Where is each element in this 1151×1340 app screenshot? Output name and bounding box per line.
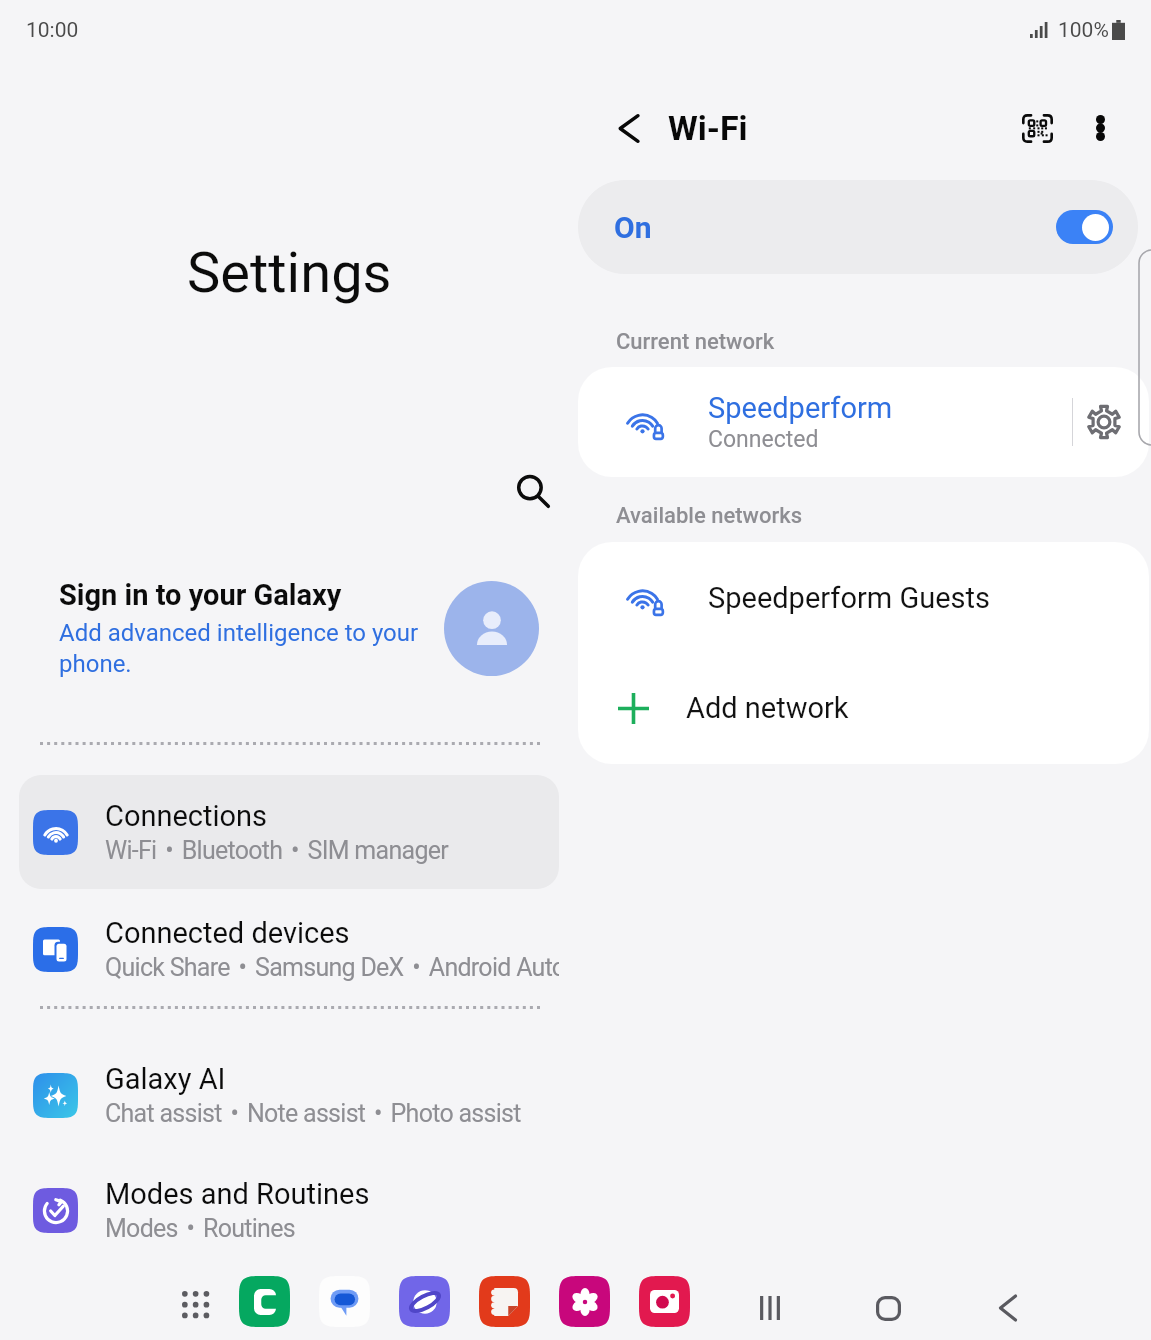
staticText: Wi-Fi	[668, 108, 748, 148]
staticText: Connected devices	[105, 916, 350, 950]
staticText: Current network	[616, 329, 775, 355]
button[interactable]: Search	[503, 461, 563, 521]
button[interactable]: Home	[858, 1278, 918, 1338]
staticText: Chat assist • Note assist • Photo assist	[105, 1099, 521, 1128]
button[interactable]: More options	[1078, 106, 1122, 150]
button[interactable]: Apps	[167, 1276, 223, 1332]
button[interactable]: Galaxy AI	[19, 1038, 559, 1152]
button[interactable]: Connections	[19, 775, 559, 889]
button[interactable]: Speedperform	[578, 367, 1149, 477]
staticText: Modes and Routines	[105, 1177, 370, 1211]
staticText: Speedperform Guests	[708, 581, 990, 615]
button[interactable]: Scan QR code	[1012, 103, 1062, 153]
button[interactable]: Add network	[578, 654, 1149, 762]
button[interactable]: On	[578, 180, 1138, 274]
button[interactable]: Connected devices	[19, 892, 559, 1006]
staticText: On	[614, 210, 652, 245]
staticText: Connections	[105, 799, 268, 833]
button[interactable]: Modes and Routines	[19, 1153, 559, 1267]
staticText: Settings	[187, 240, 392, 306]
button[interactable]: Back	[606, 105, 652, 151]
staticText: Add network	[686, 691, 849, 725]
button[interactable]: Gallery	[559, 1276, 610, 1327]
button[interactable]: Internet	[399, 1276, 450, 1327]
staticText: 100%	[1058, 18, 1109, 43]
staticText: Sign in to your Galaxy	[59, 578, 342, 612]
staticText: 10:00	[26, 18, 79, 43]
staticText: Connected	[708, 426, 819, 453]
button[interactable]: Sign in to your Galaxy	[59, 578, 539, 678]
staticText: Wi-Fi • Bluetooth • SIM manager	[105, 836, 449, 865]
button[interactable]: Phone	[239, 1276, 290, 1327]
staticText: Add advanced intelligence to your phone.	[59, 619, 419, 678]
staticText: Available networks	[616, 503, 803, 529]
button[interactable]: Back	[978, 1278, 1038, 1338]
button[interactable]: Speedperform Guests	[578, 542, 1149, 654]
staticText: Galaxy AI	[105, 1062, 226, 1096]
button[interactable]: Notes	[479, 1276, 530, 1327]
staticText: Quick Share • Samsung DeX • Android Auto	[105, 953, 559, 982]
staticText: Modes • Routines	[105, 1214, 295, 1243]
button[interactable]: Recents	[740, 1278, 800, 1338]
button[interactable]: Camera	[639, 1276, 690, 1327]
button[interactable]: Network settings	[1073, 391, 1135, 453]
button[interactable]: Messages	[319, 1276, 370, 1327]
staticText: Speedperform	[708, 391, 893, 425]
